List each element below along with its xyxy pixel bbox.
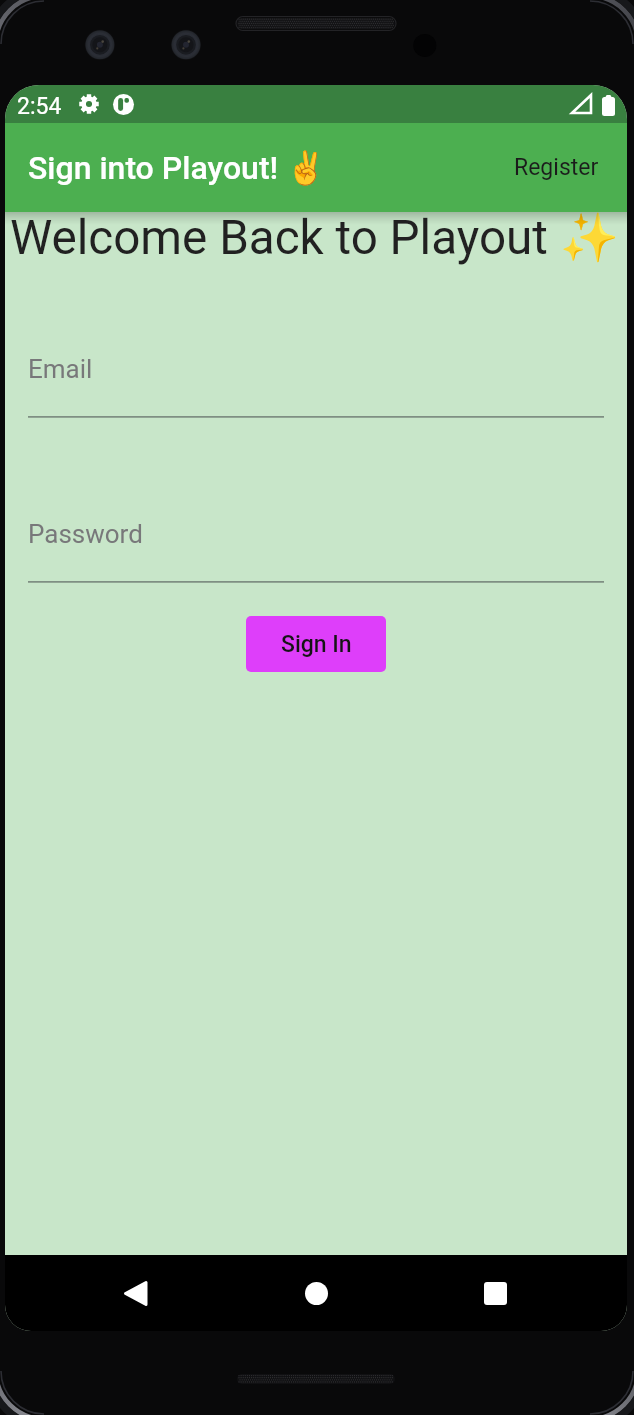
button[interactable]: Back — [107, 1265, 163, 1321]
button[interactable]: Sign In — [246, 616, 386, 672]
staticText: Sign into Playout! ✌️ — [28, 149, 326, 187]
staticText: 2:54 — [17, 93, 62, 120]
button[interactable]: Recent apps — [467, 1265, 523, 1321]
staticText: Welcome Back to Playout ✨ — [10, 210, 619, 266]
button[interactable]: Password — [28, 519, 604, 593]
staticText: Register — [514, 154, 599, 181]
button[interactable]: Home — [288, 1265, 344, 1321]
button[interactable]: Email — [28, 354, 604, 428]
staticText: Sign In — [281, 631, 352, 658]
staticText: Password — [28, 519, 143, 549]
button[interactable]: Register — [510, 144, 603, 191]
staticText: Email — [28, 354, 93, 384]
